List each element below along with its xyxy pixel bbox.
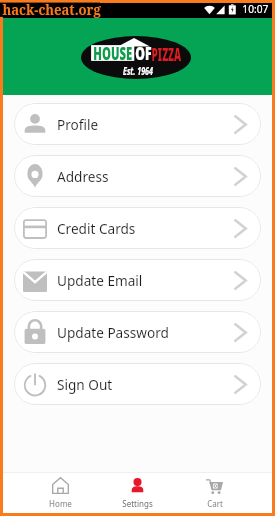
staticText: Credit Cards [57, 219, 136, 238]
button[interactable]: Profile [14, 103, 261, 145]
button[interactable]: Credit Cards [14, 207, 261, 249]
button[interactable]: Cart [176, 473, 253, 513]
staticText: Home [49, 498, 72, 509]
button[interactable]: Address [14, 155, 261, 197]
staticText: Profile [57, 115, 99, 134]
staticText: Settings [122, 498, 153, 509]
staticText: Update Email [57, 271, 143, 290]
staticText: Cart [207, 498, 223, 509]
button[interactable]: Sign Out [14, 363, 261, 405]
staticText: Update Password [57, 323, 169, 342]
button[interactable]: Update Password [14, 311, 261, 353]
button[interactable]: Settings [99, 473, 176, 513]
staticText: Address [57, 167, 109, 186]
button[interactable]: Update Email [14, 259, 261, 301]
button[interactable]: Home [22, 473, 99, 513]
staticText: Sign Out [57, 375, 113, 394]
